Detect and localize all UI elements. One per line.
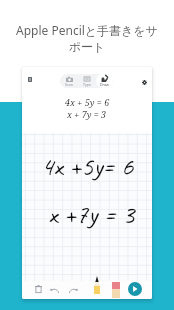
button[interactable]: Redo — [66, 283, 80, 297]
button[interactable]: Eraser — [107, 280, 124, 298]
button[interactable]: Type — [78, 74, 96, 88]
button[interactable]: Undo — [47, 283, 61, 297]
staticText: x + 7y = 3 — [67, 108, 107, 120]
staticText: Scan — [65, 82, 73, 87]
button[interactable]: Delete — [31, 282, 45, 296]
button[interactable]: Send — [128, 282, 142, 296]
button[interactable]: Settings — [139, 77, 150, 88]
button[interactable]: Scan — [60, 74, 78, 88]
staticText: Type — [83, 82, 91, 87]
staticText: 4x +5y= 6 — [41, 149, 134, 183]
button[interactable]: Pen — [89, 276, 104, 294]
staticText: Apple Pencilと手書きをサポート — [13, 22, 161, 55]
staticText: x +7y = 3 — [48, 197, 135, 231]
staticText: 4x + 5y = 6 — [65, 96, 110, 108]
button[interactable]: Documents — [24, 74, 35, 85]
button[interactable]: Draw — [96, 74, 113, 88]
staticText: Draw — [100, 82, 109, 87]
